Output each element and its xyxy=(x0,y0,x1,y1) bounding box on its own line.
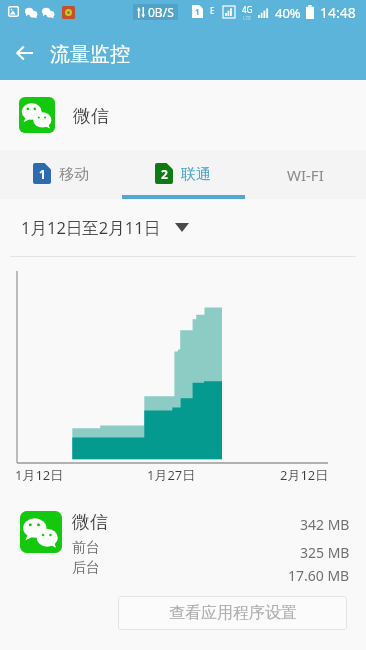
staticText: 2 xyxy=(161,166,168,182)
button[interactable]: 1 xyxy=(0,150,122,199)
staticText: 17.60 MB xyxy=(288,566,350,585)
staticText: 移动 xyxy=(59,165,89,184)
staticText: 1 xyxy=(195,6,200,17)
staticText: 4G xyxy=(242,4,253,15)
staticText: 14:48 xyxy=(320,3,356,22)
staticText: 前台 xyxy=(72,539,100,557)
staticText: 后台 xyxy=(72,559,100,577)
staticText: 微信 xyxy=(73,105,109,128)
staticText: 联通 xyxy=(181,165,211,184)
staticText: 1月27日 xyxy=(147,466,196,484)
button[interactable]: 2 xyxy=(122,150,244,199)
staticText: LTE xyxy=(243,15,252,22)
button[interactable]: 1月12日至2月11日 xyxy=(21,205,189,249)
staticText: 2月12日 xyxy=(280,466,329,484)
staticText: 0B/S xyxy=(148,4,174,20)
staticText: 1月12日 xyxy=(15,466,64,484)
button[interactable]: WI-FI xyxy=(244,150,366,199)
staticText: WI-FI xyxy=(287,165,324,185)
staticText: 微信 xyxy=(72,511,108,534)
staticText: 1 xyxy=(39,166,46,182)
staticText: 查看应用程序设置 xyxy=(169,603,297,623)
staticText: E xyxy=(210,5,215,16)
button[interactable]: Back xyxy=(7,35,42,70)
staticText: 40% xyxy=(275,4,301,22)
button[interactable]: 查看应用程序设置 xyxy=(118,596,347,630)
staticText: 1月12日至2月11日 xyxy=(21,216,161,239)
staticText: 342 MB xyxy=(300,515,350,534)
staticText: 325 MB xyxy=(300,543,350,562)
staticText: 流量监控 xyxy=(50,42,130,67)
